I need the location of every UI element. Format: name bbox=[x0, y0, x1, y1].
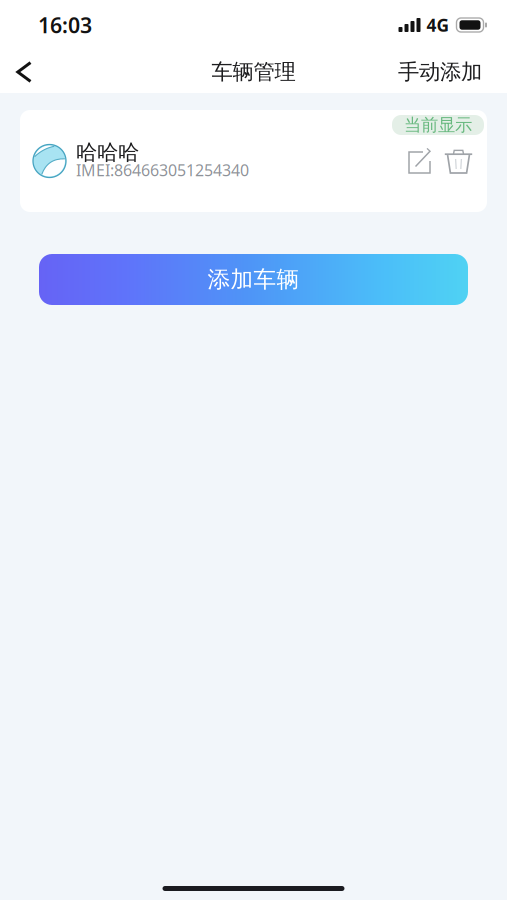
staticText: 手动添加 bbox=[398, 59, 482, 85]
staticText: 哈哈哈 bbox=[76, 139, 139, 165]
staticText: 当前显示 bbox=[404, 114, 472, 136]
button[interactable]: Delete vehicle bbox=[438, 139, 479, 183]
staticText: IMEI:864663051254340 bbox=[76, 159, 249, 181]
staticText: 16:03 bbox=[38, 11, 92, 39]
staticText: 添加车辆 bbox=[207, 266, 299, 293]
button[interactable]: Back bbox=[0, 46, 50, 93]
button[interactable]: 手动添加 bbox=[380, 43, 507, 96]
staticText: 4G bbox=[426, 13, 449, 36]
button[interactable]: Edit vehicle bbox=[402, 139, 437, 183]
staticText: 车辆管理 bbox=[211, 59, 295, 85]
button[interactable]: 添加车辆 bbox=[0, 254, 507, 305]
